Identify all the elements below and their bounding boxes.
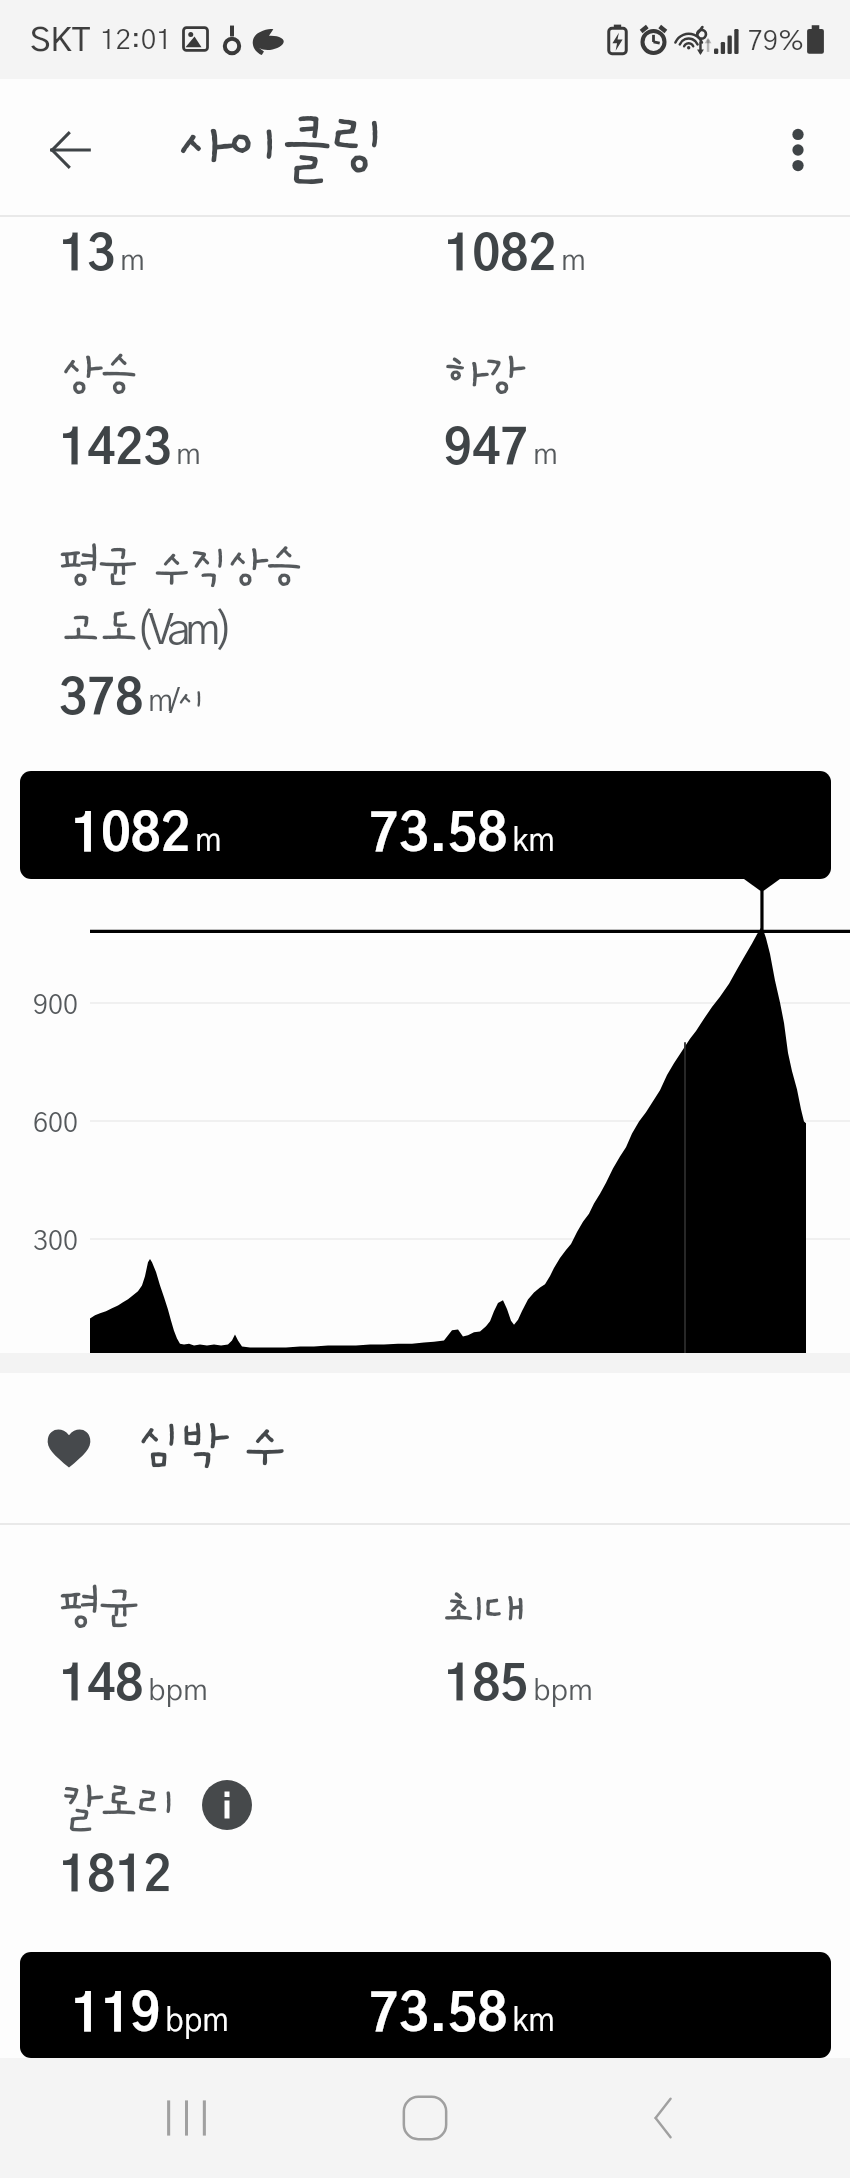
staticText: 148 [59,1662,144,1710]
staticText: 칼로리 [59,1779,174,1832]
staticText: 378 [59,676,144,724]
staticText: 947 [444,426,529,474]
staticText: km [512,825,555,857]
staticText: m [176,440,201,470]
button[interactable]: More options [754,103,842,191]
button[interactable]: Back [605,2063,715,2173]
staticText: 최대 [444,1584,521,1637]
staticText: 185 [444,1662,529,1710]
button[interactable]: 1082 [20,771,831,879]
staticText: m [533,440,558,470]
staticText: 1812 [59,1853,172,1901]
staticText: m/시 [148,682,204,720]
staticText: 하강 [444,350,521,403]
staticText: 300 [33,1228,79,1255]
staticText: bpm [533,1676,593,1706]
button[interactable]: 심박 수 [0,1373,850,1523]
staticText: 600 [33,1110,79,1137]
staticText: 고도(Vam) [59,604,229,657]
staticText: 73.58 [369,1990,508,2041]
staticText: km [512,2005,555,2037]
staticText: 13 [59,232,116,280]
button[interactable]: Calories information [202,1780,254,1832]
staticText: SKT [30,25,91,58]
button[interactable]: Back [26,103,114,191]
button[interactable]: Home [370,2063,480,2173]
staticText: bpm [148,1676,208,1706]
staticText: 1082 [71,810,191,861]
button[interactable]: 119 [20,1952,831,2058]
button[interactable]: Recent apps [131,2063,241,2173]
staticText: 900 [33,992,79,1019]
staticText: 1082 [444,232,557,280]
staticText: 1423 [59,426,172,474]
staticText: m [195,825,222,857]
staticText: m [120,246,145,276]
staticText: 심박 수 [135,1416,284,1476]
staticText: 평균 [59,1584,136,1637]
staticText: 73.58 [369,810,508,861]
staticText: m [561,246,586,276]
staticText: 12:01 [100,27,172,55]
staticText: 79% [748,28,805,55]
staticText: 평균 수직상승 [59,542,301,594]
staticText: bpm [165,2005,229,2037]
staticText: 119 [71,1990,161,2041]
staticText: 사이클링 [174,112,382,184]
staticText: 상승 [59,350,136,403]
